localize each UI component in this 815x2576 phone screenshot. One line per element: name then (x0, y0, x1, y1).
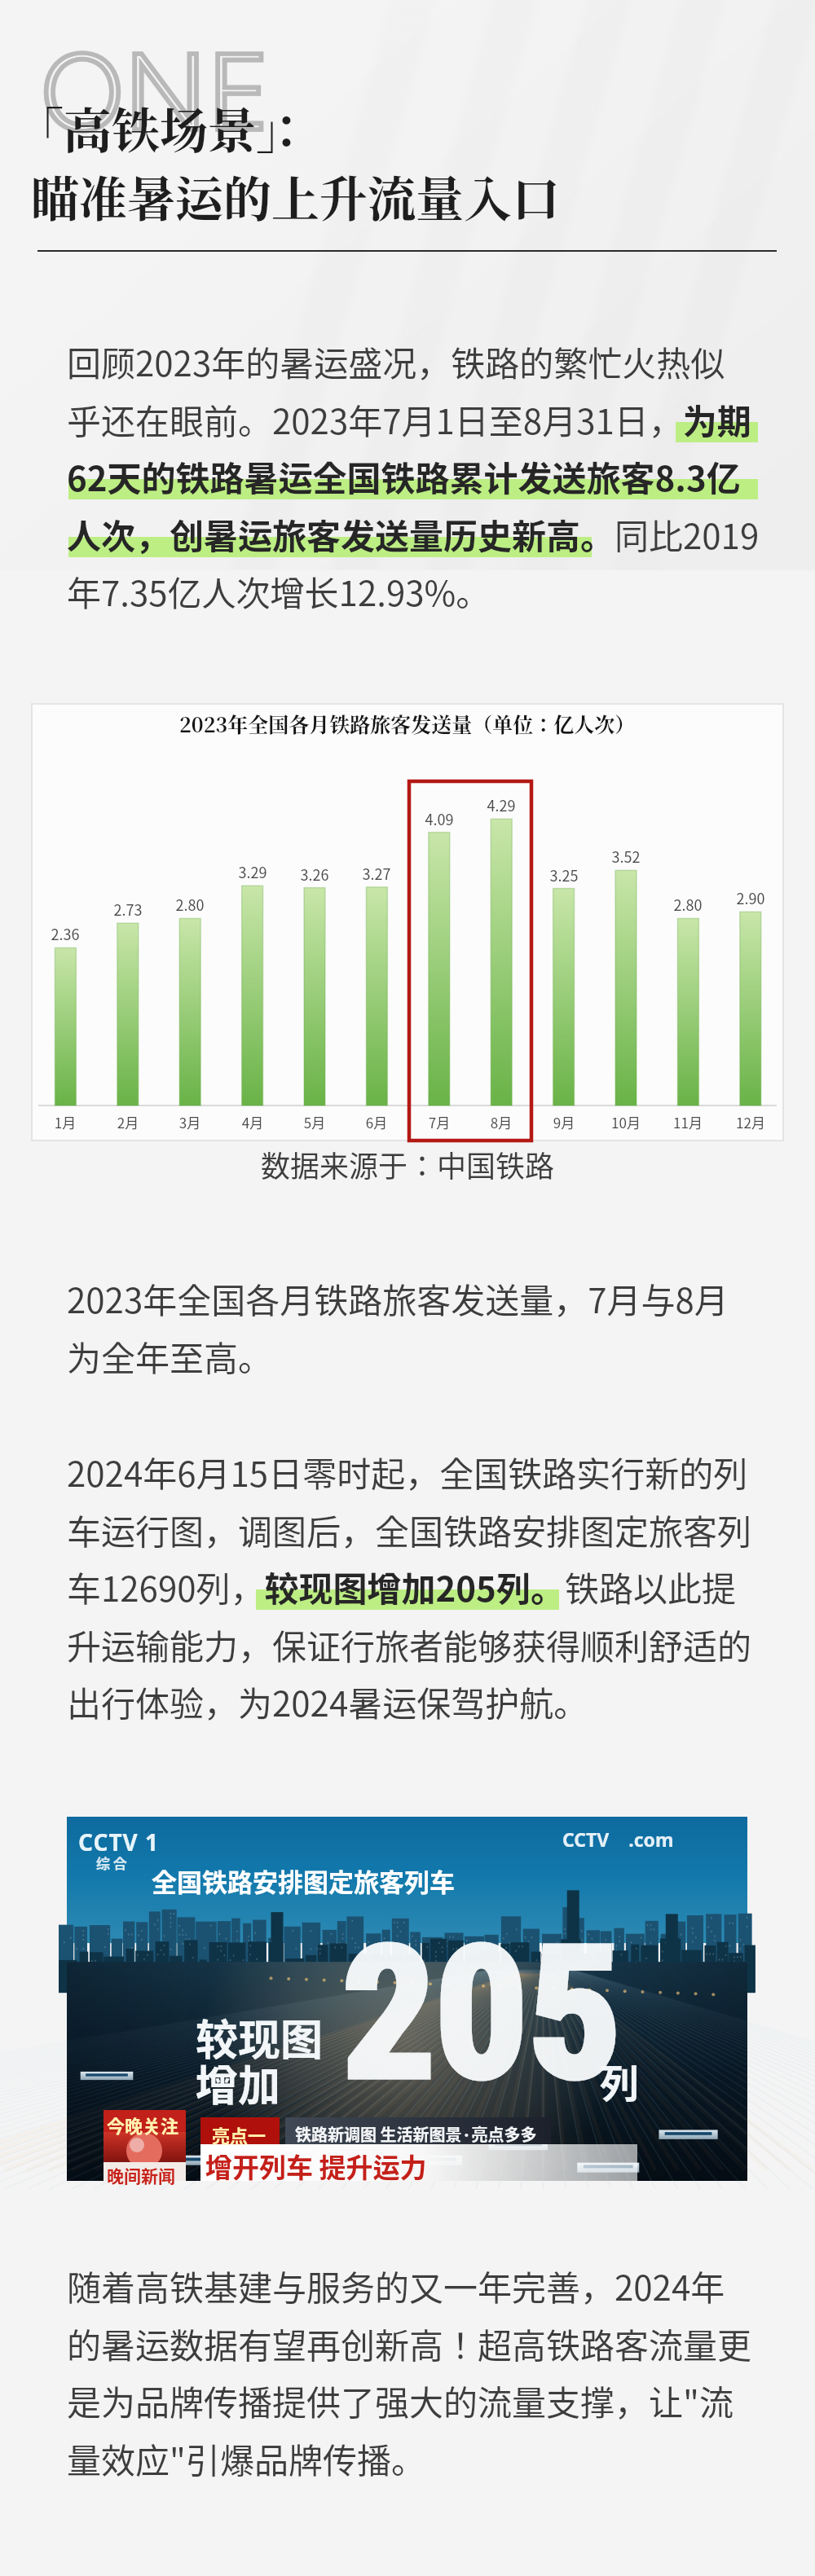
staticText: 年7.35亿人次增长12.93%。 (67, 566, 491, 616)
staticText: 增加 (196, 2052, 281, 2113)
staticText: 瞄准暑运的上升流量入口 (31, 161, 561, 231)
staticText: 8月 (460, 1112, 542, 1132)
staticText: 2.80 (647, 894, 729, 915)
staticText: 3月 (149, 1112, 231, 1132)
staticText: 晚间新闻 (107, 2163, 175, 2187)
staticText: 2月 (87, 1112, 169, 1132)
staticText: 综 合 (96, 1853, 127, 1873)
staticText: 4.29 (460, 794, 542, 815)
staticText: 7月 (399, 1112, 480, 1132)
staticText: 车12690列，较现图增加205列。铁路以此提 (67, 1562, 736, 1611)
staticText: 3.26 (274, 864, 355, 885)
staticText: 列 (600, 2052, 640, 2109)
staticText: 今晚关注 (107, 2112, 179, 2138)
staticText: 为全年至高。 (67, 1331, 273, 1381)
staticText: 10月 (585, 1112, 667, 1132)
staticText: 3.52 (585, 846, 667, 867)
staticText: 4月 (212, 1112, 293, 1132)
staticText: 2.36 (24, 923, 106, 944)
staticText: 2.73 (87, 899, 169, 920)
staticText: 亮点一 (212, 2121, 267, 2147)
staticText: 62天的铁路暑运全国铁路累计发送旅客8.3亿 (67, 451, 741, 501)
staticText: 11月 (647, 1112, 729, 1132)
staticText: 2.80 (149, 894, 231, 915)
staticText: 3.27 (336, 863, 417, 884)
staticText: 3.29 (212, 861, 293, 882)
staticText: CCTV .com (562, 1826, 674, 1852)
staticText: 「高铁场景」 (15, 93, 305, 162)
staticText: 4.09 (399, 808, 480, 829)
staticText: 2023年全国各月铁路旅客发送量，7月与8月 (67, 1273, 729, 1323)
staticText: 量效应"引爆品牌传播。 (67, 2433, 425, 2483)
staticText: 乎还在眼前。2023年7月1日至8月31日，为期 (67, 394, 751, 444)
staticText: 数据来源于：中国铁路 (0, 1143, 815, 1185)
staticText: 1月 (24, 1112, 106, 1132)
staticText: 升运输能力，保证行旅者能够获得顺利舒适的 (67, 1620, 752, 1669)
staticText: 9月 (523, 1112, 605, 1132)
staticText: 3.25 (523, 864, 605, 886)
staticText: 的暑运数据有望再创新高！超高铁路客流量更 (67, 2319, 752, 2368)
staticText: 2.90 (710, 887, 791, 908)
staticText: ONE (41, 28, 271, 156)
staticText: 12月 (710, 1112, 791, 1132)
staticText: ： (262, 93, 311, 162)
staticText: 2023年全国各月铁路旅客发送量（单位：亿人次） (179, 709, 636, 738)
staticText: 铁路新调图 生活新图景·亮点多多 (295, 2122, 537, 2146)
staticText: 6月 (336, 1112, 417, 1132)
staticText: 车运行图，调图后，全国铁路安排图定旅客列 (67, 1505, 752, 1554)
staticText: 人次，创暑运旅客发送量历史新高。同比2019 (67, 509, 760, 559)
staticText: CCTV 1 (78, 1826, 160, 1857)
staticText: 全国铁路安排图定旅客列车 (152, 1862, 455, 1899)
staticText: 随着高铁基建与服务的又一年完善，2024年 (67, 2261, 725, 2310)
staticText: 回顾2023年的暑运盛况，铁路的繁忙火热似 (67, 336, 725, 386)
staticText: 是为品牌传播提供了强大的流量支撑，让"流 (67, 2376, 733, 2425)
staticText: 较现图 (196, 2007, 324, 2068)
staticText: 205 (342, 1906, 621, 2121)
staticText: 2024年6月15日零时起，全国铁路实行新的列 (67, 1447, 748, 1497)
staticText: 出行体验，为2024暑运保驾护航。 (67, 1677, 588, 1726)
staticText: 5月 (274, 1112, 355, 1132)
staticText: 增开列车 提升运力 (205, 2147, 427, 2186)
